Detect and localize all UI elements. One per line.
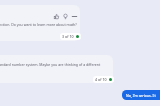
button[interactable]: No, I'm serious. I t <box>122 90 160 100</box>
staticText: 3 of 10 <box>62 34 74 39</box>
staticText: nction. Do you want to learn more about … <box>0 22 77 27</box>
staticText: No, I'm serious. I t <box>126 93 156 98</box>
button[interactable]: 4 of 10 <box>95 76 112 83</box>
button[interactable]: More options <box>71 13 77 19</box>
staticText: andard number system. Maybe you are thin… <box>0 62 101 67</box>
staticText: 4 of 10 <box>95 77 107 82</box>
button[interactable]: 3 of 10 <box>62 33 79 40</box>
button[interactable]: Like <box>53 13 59 19</box>
button[interactable]: Dislike <box>62 13 68 19</box>
